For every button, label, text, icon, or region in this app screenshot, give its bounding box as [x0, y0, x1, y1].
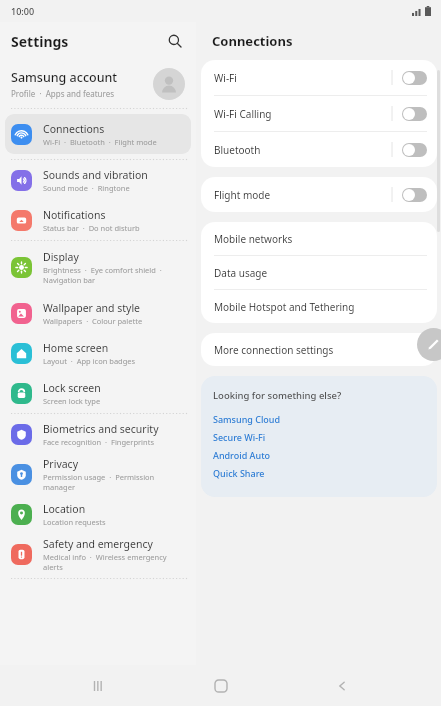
staticText: Wi-Fi · Bluetooth · Flight mode — [43, 137, 157, 147]
button[interactable]: Bluetooth — [201, 132, 437, 167]
button[interactable]: Safety and emergency — [0, 534, 196, 574]
staticText: Home screen — [43, 341, 109, 355]
button[interactable]: Recents — [77, 665, 121, 706]
button[interactable]: Samsung Cloud — [213, 410, 425, 428]
staticText: Location requests — [43, 517, 106, 527]
button[interactable]: Lock screen — [0, 373, 196, 413]
button[interactable]: Samsung account — [0, 60, 196, 108]
staticText: Android Auto — [213, 449, 271, 461]
button[interactable]: Mobile networks — [201, 222, 437, 255]
staticText: Privacy — [43, 457, 79, 471]
staticText: More connection settings — [214, 343, 334, 357]
staticText: Display — [43, 250, 79, 264]
staticText: Connections — [43, 122, 105, 136]
button[interactable]: Android Auto — [213, 446, 425, 464]
button[interactable]: Biometrics and security — [0, 414, 196, 454]
button[interactable]: Bluetooth toggle — [402, 143, 427, 157]
button[interactable]: Back — [320, 665, 364, 706]
staticText: Wi-Fi Calling — [214, 107, 392, 121]
button[interactable]: Flight mode toggle — [402, 188, 427, 202]
button[interactable]: Edit — [417, 328, 441, 361]
staticText: Sounds and vibration — [43, 168, 148, 182]
button[interactable]: Privacy — [0, 454, 196, 494]
staticText: 10:00 — [11, 5, 35, 17]
button[interactable]: Connections — [5, 114, 191, 154]
button[interactable]: Wi-Fi toggle — [402, 71, 427, 85]
staticText: Status bar · Do not disturb — [43, 223, 140, 233]
staticText: Profile · Apps and features — [11, 88, 115, 99]
button[interactable]: Home screen — [0, 333, 196, 373]
staticText: Wi-Fi — [214, 71, 392, 85]
button[interactable]: Mobile Hotspot and Tethering — [201, 290, 437, 323]
staticText: Sound mode · Ringtone — [43, 183, 130, 193]
staticText: Mobile networks — [214, 232, 293, 246]
staticText: Looking for something else? — [213, 389, 342, 402]
button[interactable]: Wi-Fi Calling — [201, 96, 437, 131]
staticText: Face recognition · Fingerprints — [43, 437, 154, 447]
staticText: Secure Wi-Fi — [213, 431, 266, 443]
button[interactable]: Wi-Fi Calling toggle — [402, 107, 427, 121]
staticText: Safety and emergency — [43, 537, 153, 551]
staticText: Location — [43, 502, 86, 516]
button[interactable]: Quick Share — [213, 464, 425, 482]
button[interactable]: More connection settings — [201, 333, 437, 366]
staticText: Notifications — [43, 208, 106, 222]
button[interactable]: Home — [199, 665, 243, 706]
staticText: Wallpaper and style — [43, 301, 141, 315]
button[interactable]: Wi-Fi — [201, 60, 437, 95]
staticText: Medical info · Wireless emergency alerts — [43, 552, 188, 572]
staticText: Data usage — [214, 266, 268, 280]
staticText: Settings — [11, 32, 69, 51]
staticText: Samsung Cloud — [213, 413, 281, 425]
staticText: Lock screen — [43, 381, 101, 395]
staticText: Mobile Hotspot and Tethering — [214, 300, 355, 314]
staticText: Screen lock type — [43, 396, 101, 406]
button[interactable]: Notifications — [0, 200, 196, 240]
button[interactable]: Flight mode — [201, 177, 437, 212]
staticText: Connections — [212, 32, 293, 50]
staticText: Biometrics and security — [43, 422, 159, 436]
button[interactable]: Sounds and vibration — [0, 160, 196, 200]
staticText: Wallpapers · Colour palette — [43, 316, 143, 326]
button[interactable]: Wallpaper and style — [0, 293, 196, 333]
button[interactable]: Location — [0, 494, 196, 534]
staticText: Bluetooth — [214, 143, 392, 157]
button[interactable]: Search — [161, 27, 189, 55]
staticText: Layout · App icon badges — [43, 356, 136, 366]
button[interactable]: Secure Wi-Fi — [213, 428, 425, 446]
staticText: Brightness · Eye comfort shield · Naviga… — [43, 265, 162, 285]
button[interactable]: Data usage — [201, 256, 437, 289]
staticText: Flight mode — [214, 188, 392, 202]
staticText: Samsung account — [11, 69, 118, 86]
button[interactable]: Display — [0, 241, 196, 293]
staticText: Permission usage · Permission manager — [43, 472, 188, 492]
staticText: Quick Share — [213, 467, 265, 479]
